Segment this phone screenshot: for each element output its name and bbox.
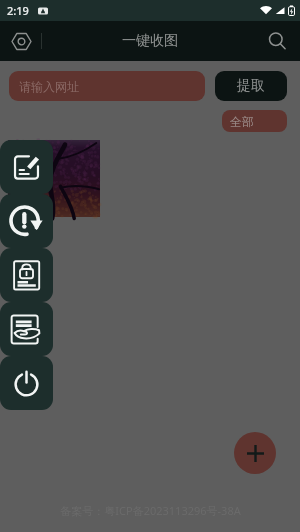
button[interactable]: Edit (0, 140, 53, 194)
button[interactable]: Exit (0, 356, 53, 410)
button[interactable]: Check update (0, 194, 53, 248)
button[interactable]: Search (261, 25, 293, 57)
staticText: 备案号：粤ICP备2023113296号-38A (60, 503, 241, 518)
button[interactable]: Privacy policy (0, 248, 53, 302)
button[interactable]: Terms of service (0, 302, 53, 356)
button[interactable]: 请输入网址 (9, 71, 205, 101)
staticText: 请输入网址 (19, 79, 79, 94)
staticText: 全部 (230, 114, 254, 129)
button[interactable]: Add (234, 432, 276, 474)
button[interactable]: 全部 (222, 110, 287, 132)
button[interactable]: 提取 (215, 71, 287, 101)
staticText: 一键收图 (122, 32, 178, 50)
staticText: 2:19 (7, 3, 29, 18)
staticText: 提取 (237, 77, 265, 95)
button[interactable]: Settings (5, 25, 37, 57)
